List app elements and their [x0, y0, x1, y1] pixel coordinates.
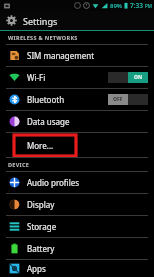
staticText: ON — [134, 74, 143, 81]
button[interactable]: Apps — [0, 260, 154, 277]
staticText: Audio profiles — [27, 177, 148, 188]
staticText: OFF — [113, 96, 123, 103]
staticText: SIM management — [27, 50, 148, 61]
button[interactable]: Battery — [0, 238, 154, 259]
button[interactable]: Display — [0, 194, 154, 215]
staticText: 7:33 — [130, 1, 143, 10]
button[interactable]: SIM management — [0, 45, 154, 66]
button[interactable]: Settings — [0, 11, 154, 30]
staticText: Wi-Fi — [27, 72, 108, 83]
staticText: Settings — [23, 15, 58, 27]
staticText: Bluetooth — [27, 94, 108, 105]
button[interactable]: Bluetooth off — [108, 94, 148, 105]
staticText: Display — [27, 199, 148, 210]
staticText: More... — [27, 140, 54, 151]
button[interactable]: Storage — [0, 216, 154, 237]
staticText: 89% — [110, 2, 122, 10]
button[interactable]: More... — [0, 133, 154, 157]
staticText: PM — [145, 3, 152, 9]
staticText: Battery — [27, 243, 148, 254]
button[interactable]: Bluetooth — [0, 89, 154, 110]
staticText: Data usage — [27, 116, 148, 127]
button[interactable]: Audio profiles — [0, 172, 154, 193]
staticText: Storage — [27, 221, 148, 232]
button[interactable]: Wi-Fi — [0, 67, 154, 88]
staticText: Apps — [27, 263, 148, 274]
staticText: DEVICE — [8, 161, 30, 168]
staticText: WIRELESS & NETWORKS — [8, 34, 78, 41]
button[interactable]: Wi-Fi on — [108, 72, 148, 83]
button[interactable]: Data usage — [0, 111, 154, 132]
